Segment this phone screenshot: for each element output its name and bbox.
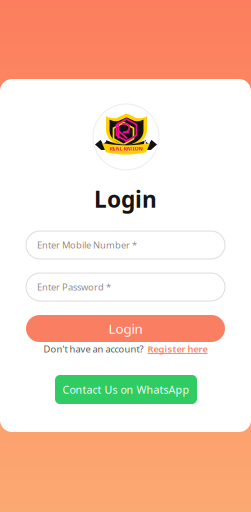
staticText: Login — [94, 184, 157, 214]
staticText: Enter Password * — [37, 281, 111, 293]
staticText: Login — [108, 320, 142, 337]
staticText: Contact Us on WhatsApp — [62, 382, 189, 397]
button[interactable]: Register here — [147, 343, 207, 355]
button[interactable]: Login — [26, 315, 225, 342]
staticText: Enter Mobile Number * — [37, 239, 137, 251]
staticText: Register here — [147, 343, 207, 355]
staticText: REAL RATION — [109, 145, 142, 152]
staticText: Don't have an account? — [43, 343, 143, 355]
button[interactable]: Contact Us on WhatsApp — [55, 375, 197, 404]
